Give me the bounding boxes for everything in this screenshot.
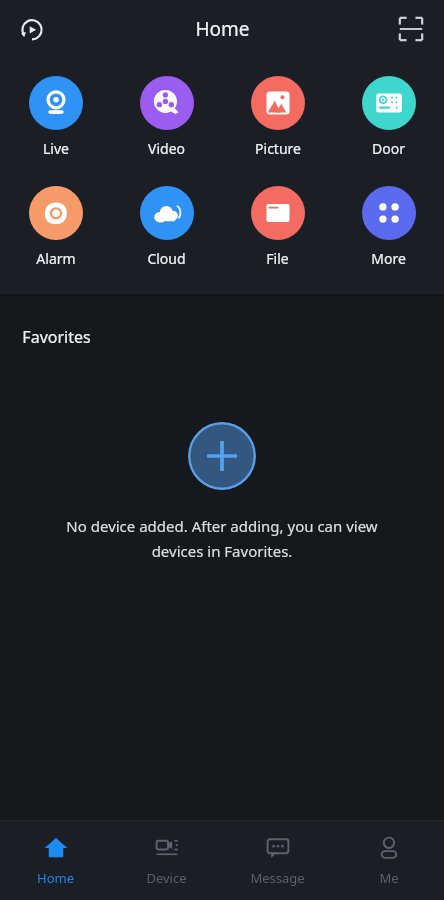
- staticText: Alarm: [36, 249, 76, 268]
- button[interactable]: File: [222, 182, 333, 272]
- staticText: Cloud: [147, 249, 186, 268]
- button[interactable]: Home: [0, 821, 111, 900]
- button[interactable]: Cloud: [111, 182, 222, 272]
- button[interactable]: Picture: [222, 72, 333, 162]
- button[interactable]: History playback: [8, 5, 56, 53]
- staticText: Home: [195, 16, 250, 42]
- staticText: Live: [43, 139, 69, 158]
- button[interactable]: Video: [111, 72, 222, 162]
- staticText: File: [266, 249, 289, 268]
- staticText: Door: [372, 139, 405, 158]
- button[interactable]: Device: [111, 821, 222, 900]
- staticText: Video: [148, 139, 185, 158]
- button[interactable]: Scan QR code: [388, 6, 434, 52]
- staticText: Me: [379, 869, 399, 887]
- button[interactable]: Door: [333, 72, 444, 162]
- staticText: More: [371, 249, 406, 268]
- button[interactable]: Add device: [188, 422, 256, 490]
- button[interactable]: Live: [0, 72, 111, 162]
- staticText: Device: [146, 869, 187, 887]
- staticText: Favorites: [22, 326, 91, 348]
- staticText: Home: [37, 869, 74, 887]
- staticText: No device added. After adding, you can v…: [26, 516, 418, 561]
- staticText: Picture: [255, 139, 301, 158]
- button[interactable]: Me: [333, 821, 444, 900]
- button[interactable]: More: [333, 182, 444, 272]
- button[interactable]: Alarm: [0, 182, 111, 272]
- button[interactable]: Message: [222, 821, 333, 900]
- staticText: Message: [250, 869, 305, 887]
